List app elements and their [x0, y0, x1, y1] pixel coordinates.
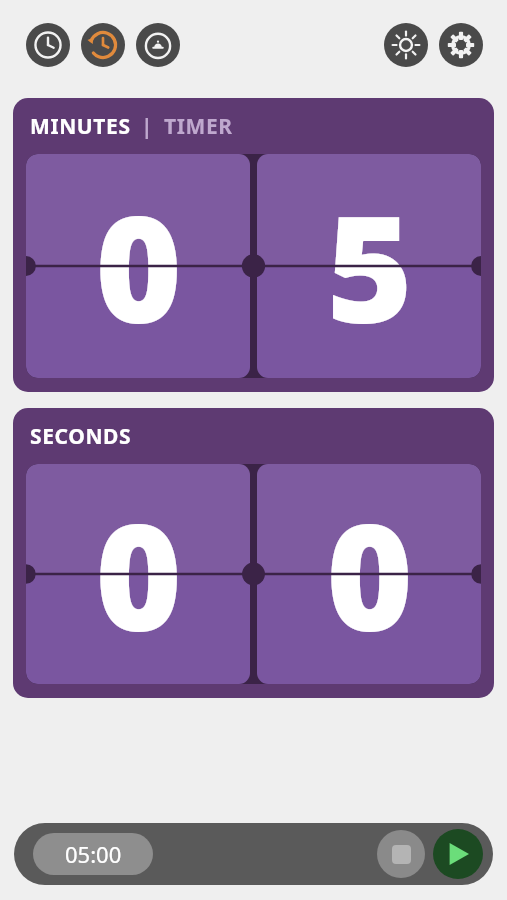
staticText: 0 [95, 165, 182, 367]
staticText: 0 [326, 473, 413, 675]
staticText: MINUTES [30, 112, 131, 141]
button[interactable]: SECONDS [13, 408, 494, 698]
staticText: TIMER [164, 112, 233, 141]
button[interactable]: Clock [26, 23, 70, 67]
staticText: 5 [326, 165, 413, 367]
button[interactable]: Timer [81, 23, 125, 67]
button[interactable]: Alarm [136, 23, 180, 67]
button[interactable]: 05:00 [33, 833, 153, 875]
button[interactable]: Start [433, 829, 483, 879]
button[interactable]: Settings [439, 23, 483, 67]
staticText: 0 [95, 473, 182, 675]
button[interactable]: MINUTES [13, 98, 494, 392]
button[interactable]: Stop [377, 830, 425, 878]
button[interactable]: Brightness [384, 23, 428, 67]
staticText: SECONDS [30, 422, 132, 451]
staticText: | [141, 112, 154, 141]
staticText: 05:00 [65, 839, 122, 869]
